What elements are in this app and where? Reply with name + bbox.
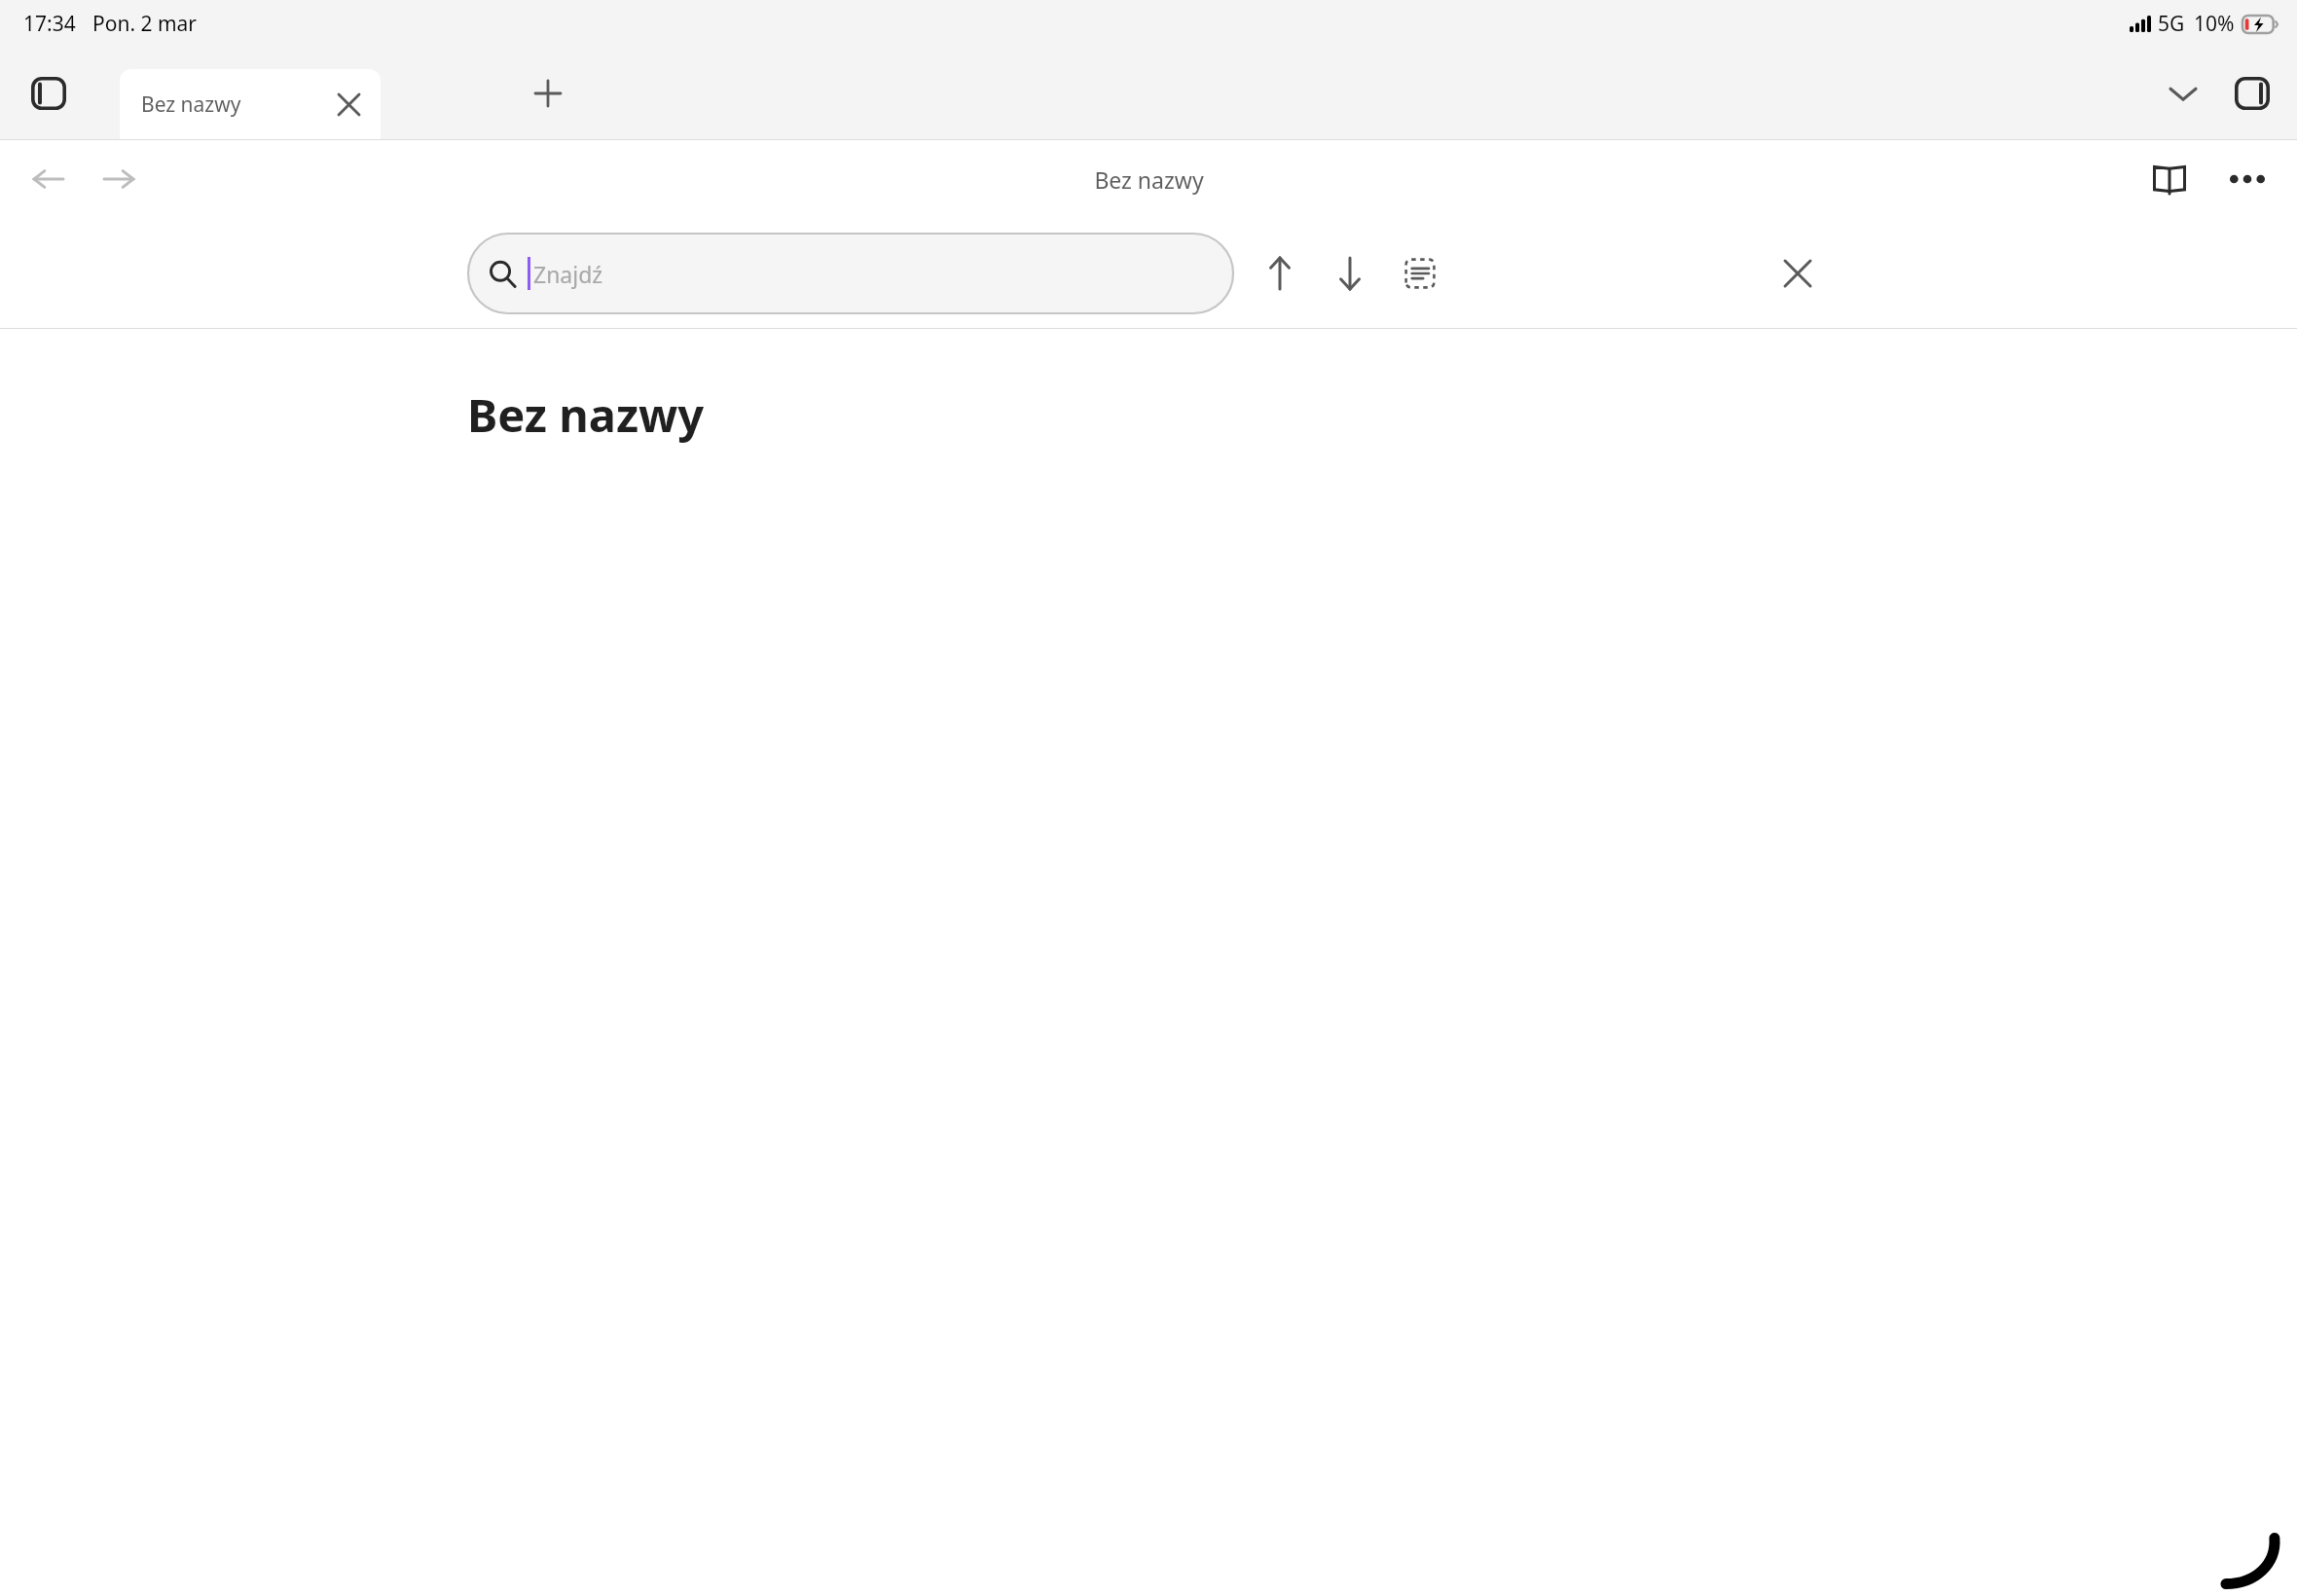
button[interactable]: Bez nazwy xyxy=(120,69,381,139)
button[interactable]: Forward xyxy=(91,152,146,206)
button[interactable]: Show right panel xyxy=(2227,68,2278,119)
button[interactable]: Show sidebar xyxy=(23,68,74,119)
button[interactable]: Back xyxy=(21,152,76,206)
button[interactable]: Reading mode xyxy=(2141,151,2198,207)
staticText: Bez nazwy xyxy=(467,383,705,446)
staticText: Znajdź xyxy=(533,259,603,289)
staticText: 10% xyxy=(2194,10,2235,38)
staticText: Bez nazwy xyxy=(141,91,241,119)
button[interactable]: Tab options xyxy=(2157,67,2209,120)
button[interactable]: Previous match xyxy=(1251,244,1309,303)
button[interactable]: Next match xyxy=(1321,244,1379,303)
staticText: Bez nazwy xyxy=(1094,164,1204,195)
button[interactable]: New tab xyxy=(522,67,574,120)
staticText: 5G xyxy=(2158,10,2185,38)
button[interactable]: Close find bar xyxy=(1769,245,1826,302)
button[interactable]: More options xyxy=(2219,151,2276,207)
staticText: Pon. 2 mar xyxy=(92,10,198,38)
button[interactable]: Close tab xyxy=(328,84,369,125)
button[interactable]: Select all matches xyxy=(1391,244,1449,303)
staticText: 17:34 xyxy=(23,10,76,38)
button[interactable]: Znajdź xyxy=(467,233,1234,314)
